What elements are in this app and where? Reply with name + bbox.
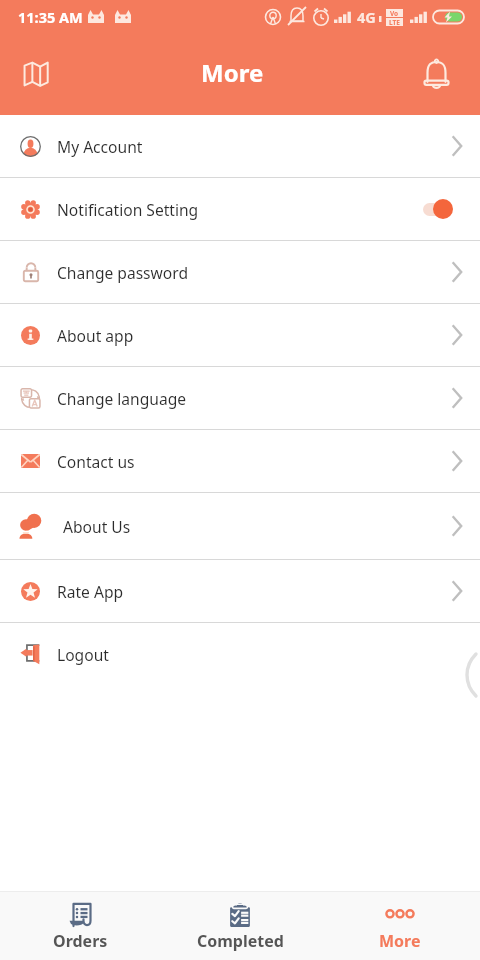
staticText: About Us [63,516,131,537]
staticText: Orders [53,930,108,952]
staticText: More [201,56,264,89]
staticText: Notification Setting [57,199,199,220]
button[interactable]: Change language [0,367,480,429]
staticText: More [379,930,421,952]
staticText: My Account [57,136,143,157]
staticText: Vo [390,9,399,17]
button[interactable]: More [320,891,480,960]
button[interactable]: Notification toggle [422,196,460,222]
staticText: About app [57,325,134,346]
button[interactable]: Notifications [408,44,480,103]
button[interactable]: Map [0,44,72,103]
button[interactable]: Notification Setting [0,178,480,240]
button[interactable]: About app [0,304,480,366]
staticText: 4G [357,7,376,27]
button[interactable]: Orders [0,891,160,960]
staticText: Rate App [57,581,124,602]
button[interactable]: Change password [0,241,480,303]
button[interactable]: My Account [0,115,480,177]
staticText: Change password [57,262,189,283]
button[interactable]: Rate App [0,560,480,622]
staticText: Contact us [57,451,135,472]
staticText: Logout [57,644,109,665]
staticText: 11:35 AM [18,7,83,27]
button[interactable]: Logout [0,623,480,685]
button[interactable]: Completed [160,891,320,960]
staticText: Completed [197,930,284,952]
staticText: LTE [389,18,400,26]
button[interactable]: About Us [0,493,480,559]
button[interactable]: Contact us [0,430,480,492]
staticText: Change language [57,388,187,409]
